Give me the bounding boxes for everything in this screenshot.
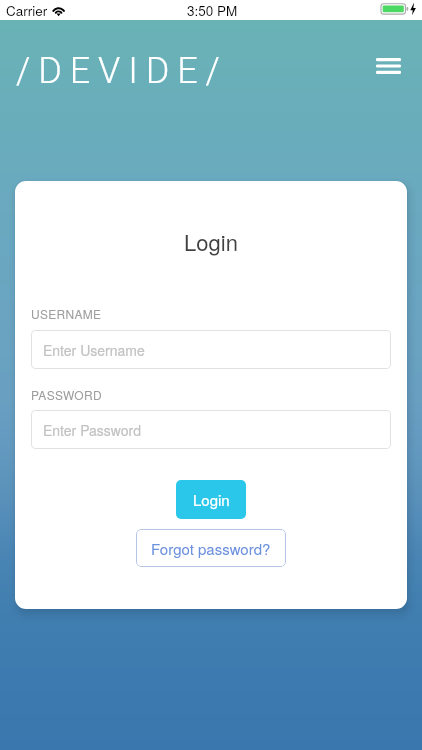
staticText: Enter Password [43,420,142,440]
staticText: PASSWORD [31,386,102,403]
button[interactable]: Enter Username [31,330,391,369]
staticText: Enter Username [43,340,145,360]
button[interactable]: Menu [365,43,411,89]
staticText: Login [15,226,407,258]
staticText: 3:50 PM [187,1,238,20]
button[interactable]: Forgot password? [136,529,286,567]
staticText: USERNAME [31,305,102,322]
staticText: /DEVIDE/ [16,50,228,92]
staticText: Carrier [6,1,48,20]
staticText: Forgot password? [151,538,271,559]
button[interactable]: Enter Password [31,410,391,449]
button[interactable]: Login [176,480,246,519]
staticText: Login [193,489,230,510]
